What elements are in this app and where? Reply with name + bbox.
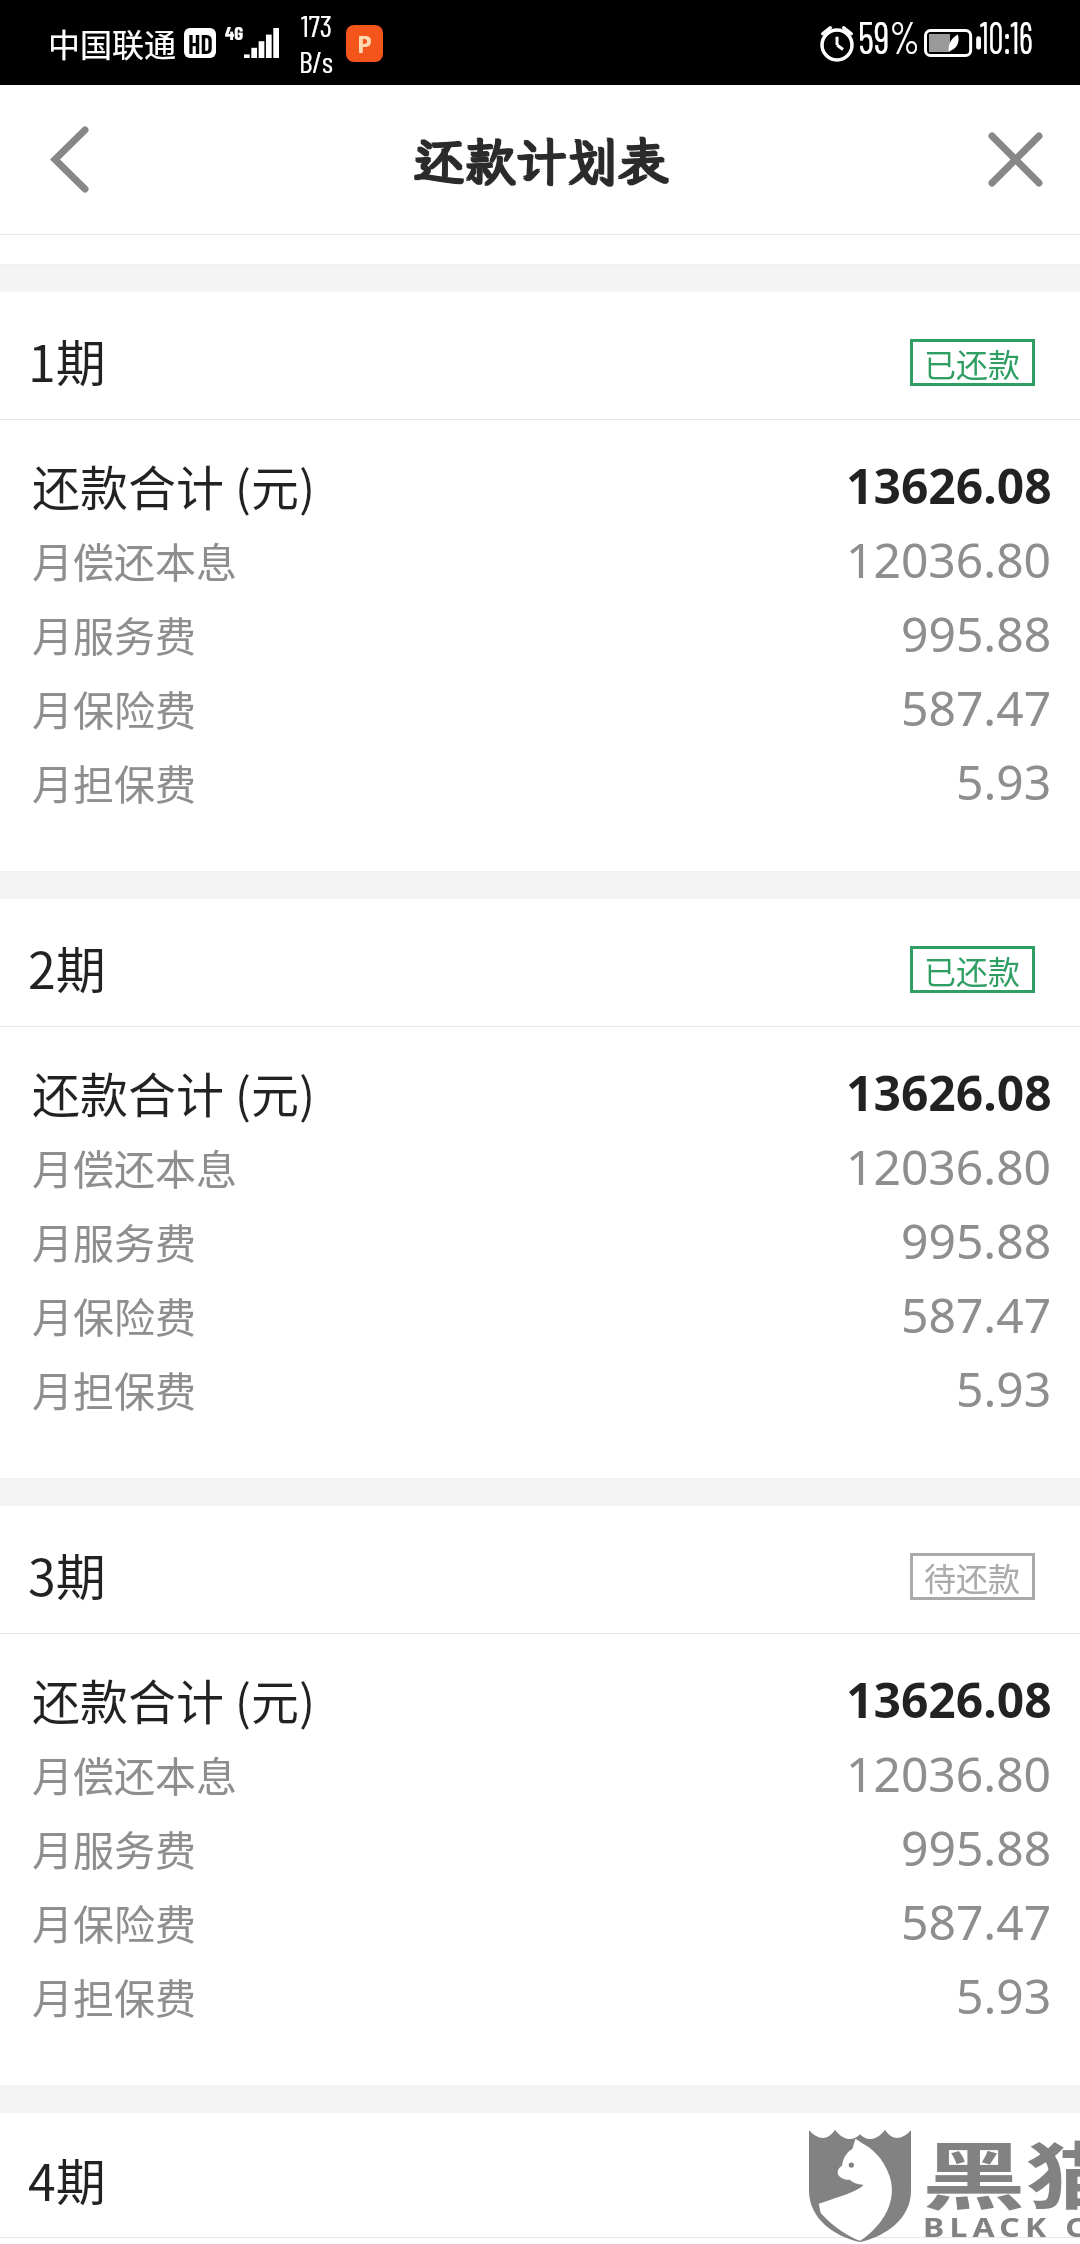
staticText: 4G [225, 21, 244, 44]
staticText: 还款计划表 [414, 126, 670, 193]
button[interactable]: 4期 [0, 2113, 1080, 2237]
staticText: 5.93 [956, 749, 1052, 814]
staticText: 月担保费 [32, 1359, 196, 1418]
staticText: BLACK CAT [923, 2208, 1080, 2244]
staticText: 587.47 [901, 675, 1052, 740]
staticText: 月偿还本息 [32, 530, 237, 589]
staticText: 5.93 [956, 1356, 1052, 1421]
staticText: 月担保费 [32, 1966, 196, 2025]
staticText: 12036.80 [846, 1741, 1052, 1806]
staticText: 月偿还本息 [32, 1137, 237, 1196]
staticText: 587.47 [901, 1889, 1052, 1954]
button[interactable]: Close [950, 85, 1080, 234]
staticText: 还款计划表 [412, 126, 668, 193]
staticText: HD [188, 28, 213, 58]
staticText: 月保险费 [32, 1892, 196, 1951]
staticText: 12036.80 [846, 527, 1052, 592]
button[interactable]: 待还款 [910, 1553, 1035, 1600]
staticText: 13626.08 [846, 453, 1052, 518]
staticText: 995.88 [901, 1815, 1052, 1880]
staticText: P [357, 27, 372, 60]
button[interactable]: 已还款 [910, 946, 1035, 993]
staticText: 3期 [28, 1538, 106, 1610]
staticText: 587.47 [901, 1282, 1052, 1347]
staticText: 59% [858, 10, 920, 63]
staticText: 月保险费 [32, 1285, 196, 1344]
button[interactable]: 已还款 [910, 339, 1035, 386]
staticText: 还款合计 (元) [32, 1057, 316, 1127]
staticText: 4期 [28, 2143, 106, 2215]
staticText: 已还款 [924, 340, 1021, 386]
staticText: 13626.08 [846, 1060, 1052, 1125]
staticText: 月服务费 [32, 604, 196, 663]
staticText: 13626.08 [846, 1667, 1052, 1732]
staticText: 还款合计 (元) [32, 1664, 316, 1734]
staticText: 995.88 [901, 1208, 1052, 1273]
staticText: 173 [301, 7, 332, 43]
staticText: 月担保费 [32, 752, 196, 811]
staticText: 月服务费 [32, 1211, 196, 1270]
button[interactable]: 1期 [0, 292, 1080, 419]
staticText: 月偿还本息 [32, 1744, 237, 1803]
staticText: 待还款 [924, 1554, 1021, 1600]
staticText: 月保险费 [32, 678, 196, 737]
staticText: 还款计划表 [414, 128, 670, 195]
staticText: 已还款 [924, 947, 1021, 993]
staticText: 12036.80 [846, 1134, 1052, 1199]
button[interactable]: Back [0, 85, 140, 234]
staticText: 2期 [28, 931, 106, 1003]
staticText: 中国联通 [48, 20, 177, 66]
staticText: 还款计划表 [412, 128, 668, 195]
staticText: 10:16 [980, 10, 1049, 63]
staticText: B/s [299, 43, 334, 79]
button[interactable]: 2期 [0, 899, 1080, 1026]
staticText: 黑猫 [922, 2118, 1080, 2224]
staticText: 995.88 [901, 601, 1052, 666]
staticText: 月服务费 [32, 1818, 196, 1877]
staticText: 1期 [28, 324, 106, 396]
staticText: 5.93 [956, 1963, 1052, 2028]
button[interactable]: 3期 [0, 1506, 1080, 1633]
staticText: 还款合计 (元) [32, 450, 316, 520]
